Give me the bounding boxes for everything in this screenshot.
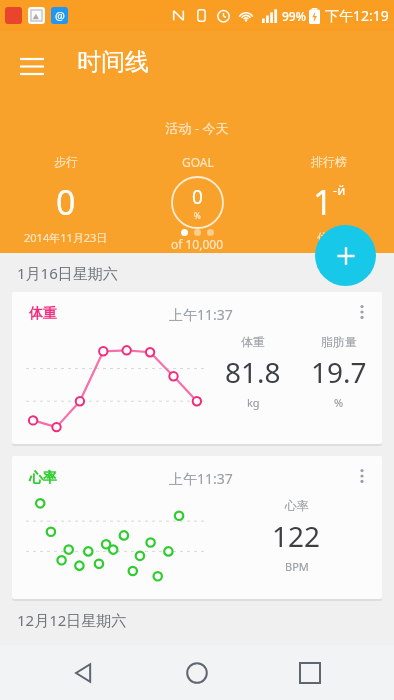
staticText: kg <box>247 395 260 410</box>
button[interactable]: More options <box>344 294 380 330</box>
button[interactable]: Back <box>55 645 113 700</box>
staticText: 0 <box>56 179 76 225</box>
staticText: GOAL <box>182 154 214 170</box>
button[interactable]: More options <box>344 458 380 494</box>
staticText: 位置 <box>317 230 341 245</box>
staticText: 下午12:19 <box>325 6 389 25</box>
staticText: 2014年11月23日 <box>24 230 108 245</box>
staticText: 体重 <box>241 334 265 349</box>
staticText: 步行 <box>54 154 78 169</box>
button[interactable]: Recent apps <box>281 645 339 700</box>
staticText: 122 <box>272 517 321 555</box>
staticText: 1月16日星期六 <box>17 263 118 283</box>
staticText: 体重 <box>29 305 57 323</box>
button[interactable]: Home <box>168 645 226 700</box>
staticText: @ <box>55 8 65 23</box>
staticText: 脂肪量 <box>321 334 357 349</box>
staticText: 心率 <box>285 498 309 513</box>
button[interactable]: 体重 <box>12 292 382 444</box>
staticText: of 10,000 <box>171 236 224 252</box>
staticText: % <box>334 395 344 410</box>
staticText: BPM <box>285 559 309 574</box>
staticText: 上午11:37 <box>169 305 233 324</box>
staticText: 12月12日星期六 <box>17 610 127 630</box>
staticText: 排行榜 <box>311 154 347 169</box>
button[interactable]: 心率 <box>12 456 382 599</box>
staticText: -й <box>333 181 346 199</box>
staticText: 19.7 <box>311 353 367 391</box>
staticText: % <box>194 210 201 221</box>
button[interactable]: Menu <box>10 44 54 88</box>
staticText: 活动 - 今天 <box>0 119 394 137</box>
staticText: 心率 <box>29 469 57 487</box>
staticText: 时间线 <box>77 47 149 77</box>
staticText: 0 <box>192 184 203 210</box>
staticText: 99% <box>282 8 306 24</box>
staticText: 81.8 <box>225 353 281 391</box>
button[interactable]: Add <box>315 225 376 286</box>
staticText: 上午11:37 <box>169 469 233 488</box>
staticText: 1 <box>313 179 333 225</box>
